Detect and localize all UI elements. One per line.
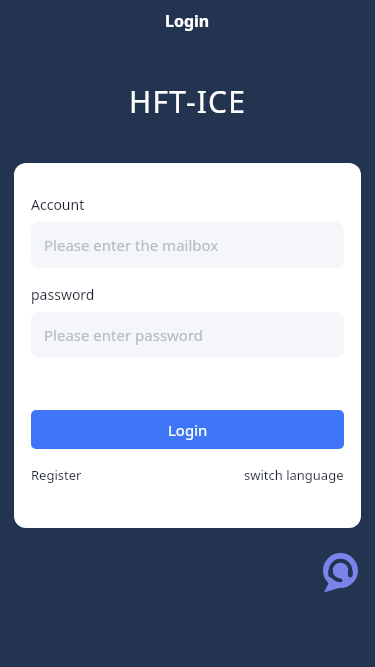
button[interactable]: Please enter the mailbox: [31, 222, 344, 268]
staticText: Login: [168, 420, 208, 440]
staticText: Please enter the mailbox: [44, 235, 219, 255]
button[interactable]: Register: [31, 466, 82, 484]
button[interactable]: [322, 553, 359, 590]
staticText: HFT-ICE: [129, 81, 247, 122]
button[interactable]: switch language: [244, 466, 344, 484]
staticText: Account: [31, 195, 85, 214]
staticText: password: [31, 285, 95, 304]
staticText: Please enter password: [44, 325, 204, 345]
staticText: Login: [165, 10, 210, 32]
button[interactable]: Login: [31, 410, 344, 449]
button[interactable]: Please enter password: [31, 312, 344, 358]
